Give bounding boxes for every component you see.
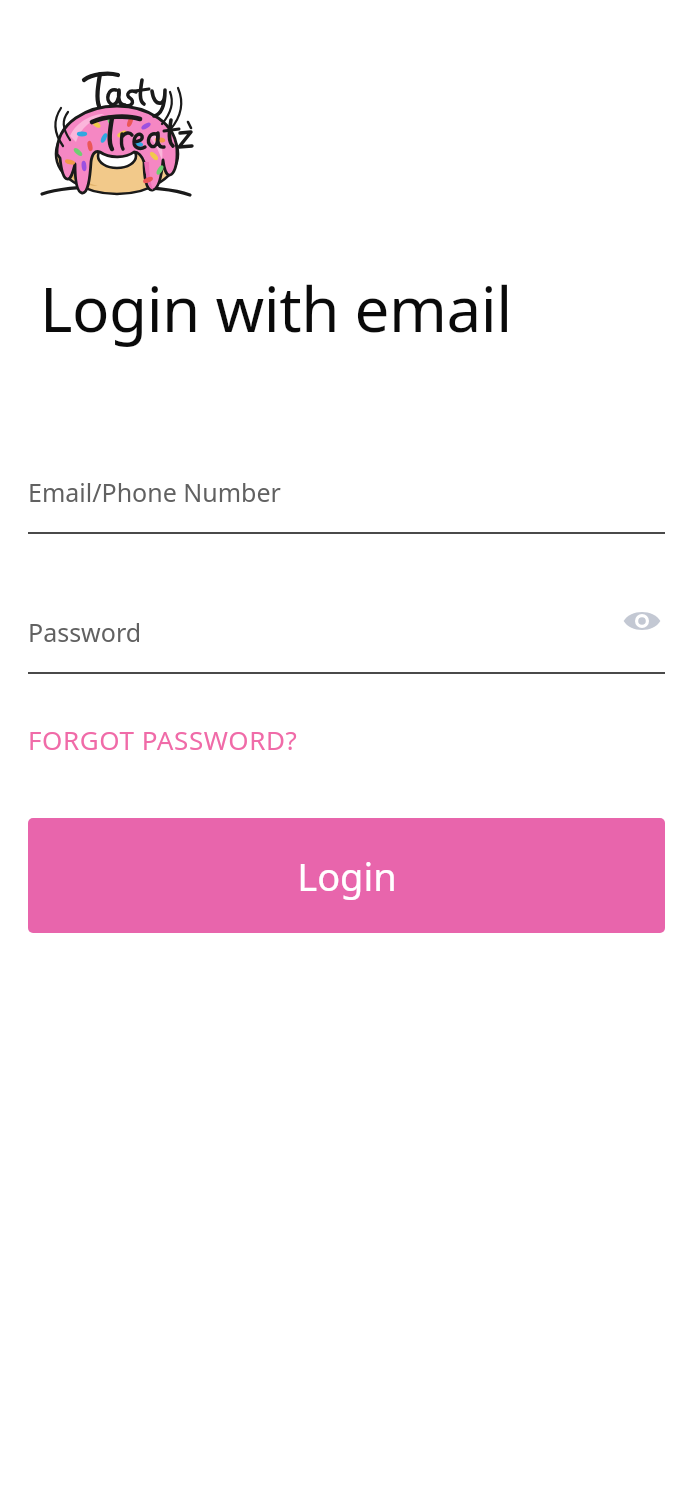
- staticText: Password: [28, 615, 142, 649]
- button[interactable]: Password: [28, 610, 665, 654]
- staticText: Email/Phone Number: [28, 475, 281, 509]
- button[interactable]: FORGOT PASSWORD?: [28, 718, 298, 761]
- button[interactable]: Show password: [619, 599, 665, 643]
- button[interactable]: Email/Phone Number: [28, 470, 665, 514]
- staticText: Login: [297, 850, 397, 902]
- button[interactable]: Login: [28, 818, 665, 933]
- staticText: FORGOT PASSWORD?: [28, 722, 298, 757]
- staticText: Login with email: [40, 266, 512, 350]
